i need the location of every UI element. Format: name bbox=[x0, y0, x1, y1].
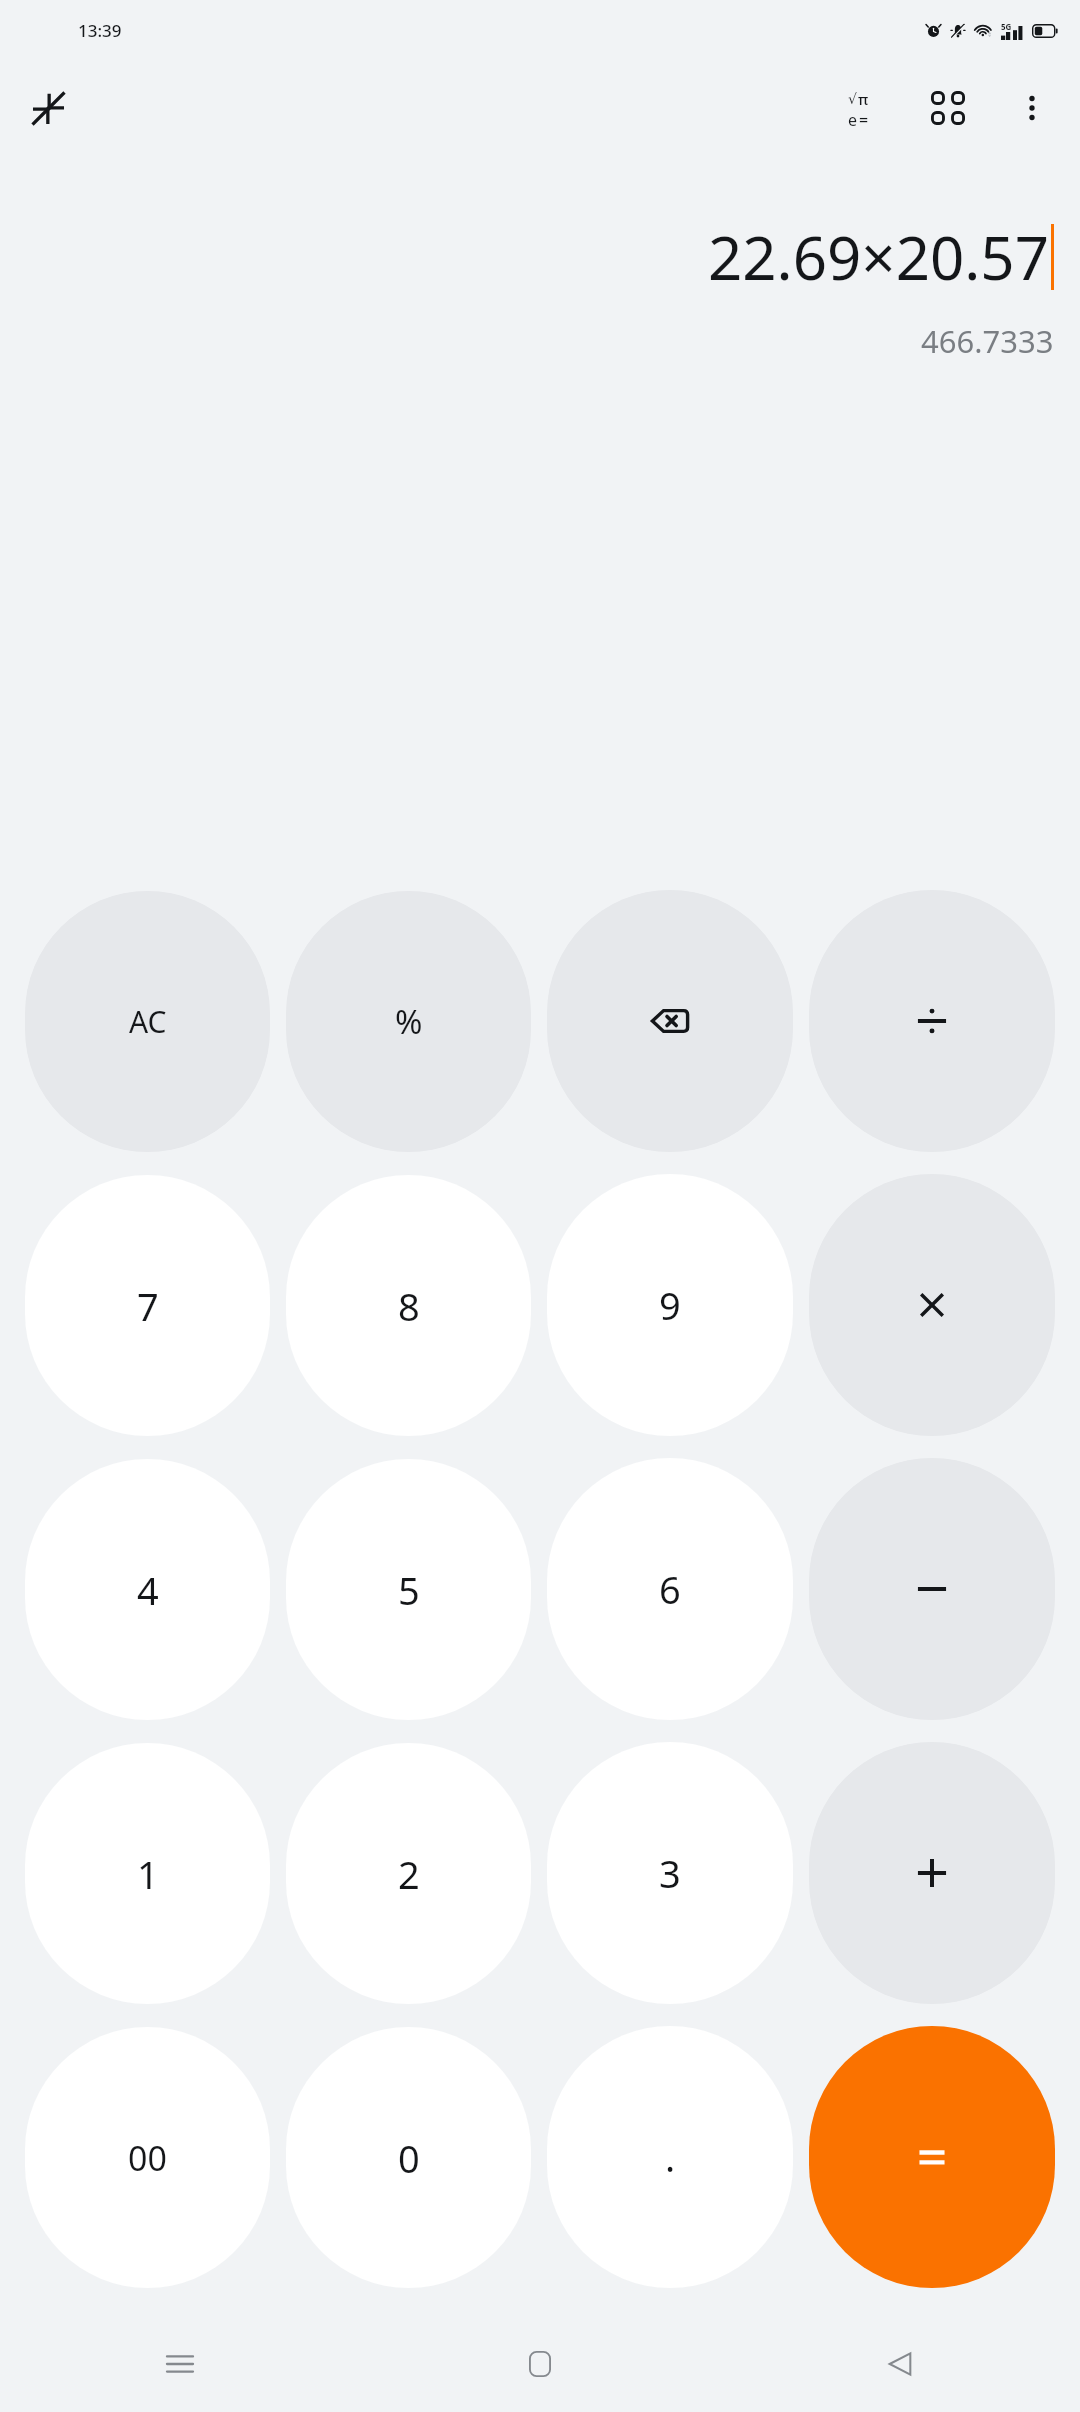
staticText: 466.7333 bbox=[921, 320, 1054, 362]
staticText: 5G bbox=[1001, 21, 1012, 32]
button[interactable]: 9 bbox=[547, 1174, 793, 1436]
button[interactable]: 4 bbox=[25, 1459, 270, 1720]
staticText: 4 bbox=[137, 1564, 159, 1616]
button[interactable]: 7 bbox=[25, 1175, 270, 1436]
button[interactable]: Unit converter bbox=[910, 70, 986, 146]
staticText: 8 bbox=[398, 1280, 420, 1332]
button[interactable]: 00 bbox=[25, 2027, 270, 2288]
button[interactable]: . bbox=[547, 2026, 793, 2288]
button[interactable]: Back bbox=[720, 2316, 1080, 2412]
button[interactable]: Divide bbox=[809, 890, 1055, 1152]
button[interactable]: 3 bbox=[547, 1742, 793, 2004]
staticText: √ bbox=[848, 91, 857, 107]
button[interactable]: 2 bbox=[286, 1743, 531, 2004]
button[interactable]: 8 bbox=[286, 1175, 531, 1436]
staticText: 7 bbox=[137, 1280, 159, 1332]
button[interactable]: 6 bbox=[547, 1458, 793, 1720]
staticText: 9 bbox=[659, 1279, 681, 1331]
staticText: % bbox=[395, 999, 423, 1044]
staticText: 3 bbox=[659, 1847, 681, 1899]
button[interactable]: % bbox=[286, 891, 531, 1152]
staticText: 6 bbox=[659, 1563, 681, 1615]
staticText: 0 bbox=[398, 2132, 420, 2184]
staticText: π bbox=[858, 89, 869, 109]
button[interactable]: Recent apps bbox=[0, 2316, 360, 2412]
staticText: AC bbox=[129, 1001, 167, 1042]
staticText: 1 bbox=[137, 1848, 159, 1900]
button[interactable]: Equals bbox=[809, 2026, 1055, 2288]
button[interactable]: Scientific mode bbox=[820, 70, 896, 146]
staticText: e bbox=[848, 109, 858, 127]
button[interactable]: 0 bbox=[286, 2027, 531, 2288]
button[interactable]: 1 bbox=[25, 1743, 270, 2004]
staticText: 5 bbox=[398, 1564, 420, 1616]
button[interactable]: Collapse bbox=[12, 72, 84, 144]
staticText: . bbox=[665, 2131, 676, 2183]
button[interactable]: Minus bbox=[809, 1458, 1055, 1720]
button[interactable]: 5 bbox=[286, 1459, 531, 1720]
button[interactable]: Multiply bbox=[809, 1174, 1055, 1436]
button[interactable]: Home bbox=[360, 2316, 720, 2412]
button[interactable]: More options bbox=[996, 72, 1068, 144]
staticText: 22.69×20.57 bbox=[707, 216, 1049, 298]
staticText: 13:39 bbox=[78, 19, 122, 42]
staticText: = bbox=[859, 109, 869, 127]
button[interactable]: Backspace bbox=[547, 890, 793, 1152]
staticText: 2 bbox=[398, 1848, 420, 1900]
button[interactable]: Plus bbox=[809, 1742, 1055, 2004]
staticText: 00 bbox=[128, 2135, 167, 2181]
button[interactable]: AC bbox=[25, 891, 270, 1152]
